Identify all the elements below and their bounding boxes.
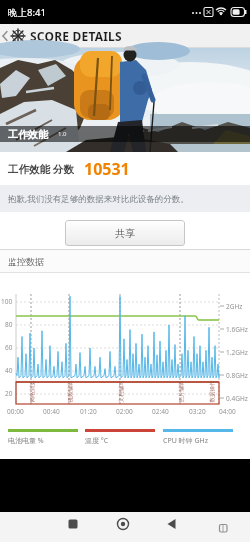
staticText: 工作效能 分数	[8, 162, 74, 176]
staticText: 03:20	[189, 407, 206, 416]
staticText: 数据操作	[208, 380, 215, 402]
staticText: 1.0	[58, 130, 67, 138]
staticText: 共享	[115, 227, 135, 240]
staticText: 02:00	[116, 407, 133, 416]
staticText: 晚上8:41	[8, 6, 46, 19]
staticText: 0.8GHz	[226, 371, 248, 380]
staticText: 1.2GHz	[226, 348, 248, 357]
staticText: 04:00	[219, 407, 236, 416]
button[interactable]	[114, 515, 132, 533]
staticText: 0.4GHz	[226, 394, 248, 403]
staticText: 00:40	[43, 407, 60, 416]
staticText: 20	[5, 389, 13, 398]
staticText: 40	[5, 366, 13, 375]
staticText: SCORE DETAILS	[30, 28, 122, 44]
button[interactable]: SCORE DETAILS	[0, 28, 122, 44]
staticText: 10531	[84, 158, 130, 180]
staticText: 视频编辑	[66, 380, 73, 402]
staticText: CPU 时钟 GHz	[163, 436, 208, 446]
staticText: 02:40	[152, 407, 169, 416]
staticText: 60	[5, 343, 13, 352]
staticText: 电池电量 %	[8, 436, 44, 446]
staticText: 照片编辑	[177, 380, 184, 402]
staticText: 1.6GHz	[226, 325, 248, 334]
button[interactable]	[64, 515, 82, 533]
button[interactable]	[216, 521, 230, 535]
staticText: 100	[1, 297, 13, 306]
staticText: 00:00	[7, 407, 24, 416]
staticText: 监控数据	[8, 256, 44, 267]
button[interactable]	[163, 515, 181, 533]
staticText: 抱歉,我们没有足够的数据来对比此设备的分数。	[8, 193, 189, 205]
staticText: 01:20	[80, 407, 97, 416]
staticText: 文档编写	[117, 380, 124, 402]
button[interactable]: 共享	[65, 220, 185, 246]
staticText: 网络浏览	[28, 380, 35, 402]
staticText: 工作效能	[8, 128, 48, 141]
staticText: 2GHz	[226, 302, 243, 311]
staticText: 80	[5, 320, 13, 329]
staticText: 温度 °C	[85, 436, 109, 446]
